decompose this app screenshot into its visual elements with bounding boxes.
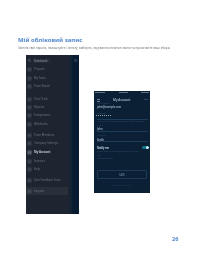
button[interactable]: My Account [26, 150, 68, 154]
staticText: Invoices [34, 159, 45, 163]
staticText: Projects [34, 67, 45, 71]
button[interactable]: Notifications toggle [142, 146, 149, 149]
staticText: Dashboard [34, 59, 48, 63]
button[interactable]: Search [26, 57, 68, 64]
staticText: Log out [34, 189, 45, 193]
staticText: My Tasks [34, 76, 46, 80]
button[interactable]: Help [26, 167, 68, 171]
staticText: Smith [97, 138, 105, 142]
button[interactable]: Team Board [26, 84, 68, 88]
staticText: DELETE ACCOUNT [112, 184, 132, 187]
staticText: My Account [34, 150, 51, 154]
button[interactable]: Give Feedback Tools [26, 178, 68, 182]
staticText: john@example.com [97, 105, 122, 109]
button[interactable]: Company Settings [26, 141, 68, 145]
staticText: Team Board [34, 84, 50, 88]
button[interactable]: SAVE [97, 170, 147, 179]
button[interactable]: Reports [26, 105, 68, 109]
staticText: We will send you notifications about act… [97, 150, 143, 159]
staticText: Company Settings [34, 141, 58, 145]
button[interactable]: Integrations [26, 113, 68, 117]
staticText: Help [34, 167, 41, 171]
staticText: Змініть свій пароль, налаштуйте і оплату… [18, 46, 179, 50]
staticText: Time Track [34, 97, 49, 101]
staticText: 26 [172, 235, 179, 242]
staticText: Change your password by entering a new o… [97, 120, 147, 123]
button[interactable]: Webhooks [26, 122, 68, 126]
button[interactable]: Log out [26, 189, 68, 193]
button[interactable] [26, 187, 68, 195]
button[interactable]: DELETE ACCOUNT [109, 183, 135, 188]
staticText: Integrations [34, 113, 51, 117]
staticText: My Account [113, 98, 131, 102]
staticText: Notify me [97, 146, 109, 150]
staticText: Мій обліковий запис [18, 36, 83, 44]
button[interactable]: Time Track [26, 97, 68, 101]
staticText: John [97, 127, 103, 131]
button[interactable]: Projects [26, 67, 68, 71]
staticText: Email address [97, 102, 111, 105]
staticText: SAVE [119, 173, 125, 177]
staticText: Password [97, 112, 107, 115]
button[interactable]: Open navigation drawer [97, 99, 100, 102]
staticText: Reports [34, 105, 45, 109]
button[interactable]: My Tasks [26, 76, 68, 80]
staticText: Surname [97, 134, 106, 137]
staticText: Name [97, 124, 103, 127]
staticText: Give Feedback Tools [34, 178, 61, 182]
staticText: Webhooks [34, 122, 48, 126]
button[interactable]: Team Members [26, 133, 68, 137]
staticText: Team Members [34, 133, 55, 137]
button[interactable]: Invoices [26, 159, 68, 163]
